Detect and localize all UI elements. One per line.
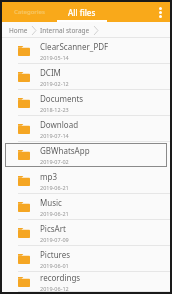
staticText: 2019-06-21 xyxy=(40,184,69,191)
staticText: Home xyxy=(9,26,28,35)
button[interactable]: Home xyxy=(9,26,28,35)
staticText: PicsArt xyxy=(40,223,66,234)
staticText: 2019-05-14 xyxy=(40,54,69,61)
staticText: Documents xyxy=(40,93,84,104)
button[interactable]: Download xyxy=(2,116,170,142)
button[interactable]: Documents xyxy=(2,90,170,116)
staticText: Pictures xyxy=(40,249,71,260)
button[interactable]: Categories xyxy=(2,2,56,22)
button[interactable]: Pictures xyxy=(2,246,170,272)
button[interactable]: Music xyxy=(2,194,170,220)
staticText: 2019-06-21 xyxy=(40,210,69,217)
staticText: DCIM xyxy=(40,67,61,78)
staticText: 2019-07-09 xyxy=(40,236,69,243)
staticText: recordings xyxy=(40,272,81,283)
button[interactable]: PicsArt xyxy=(2,220,170,246)
button[interactable]: ClearScanner_PDF xyxy=(2,38,170,64)
staticText: mp3 xyxy=(40,171,57,182)
button[interactable]: mp3 xyxy=(2,168,170,194)
staticText: 2019-07-14 xyxy=(40,132,69,139)
staticText: GBWhatsApp xyxy=(40,145,90,156)
button[interactable]: GBWhatsApp xyxy=(5,143,167,167)
staticText: Music xyxy=(40,197,62,208)
button[interactable]: More options xyxy=(150,2,170,22)
staticText: 2019-06-12 xyxy=(40,285,69,292)
button[interactable]: recordings xyxy=(2,272,170,292)
staticText: Download xyxy=(40,119,79,130)
staticText: All files xyxy=(68,7,96,18)
button[interactable]: DCIM xyxy=(2,64,170,90)
staticText: Categories xyxy=(14,8,45,16)
staticText: Internal storage xyxy=(40,26,90,35)
staticText: ClearScanner_PDF xyxy=(40,41,109,52)
staticText: 2018-12-23 xyxy=(40,106,69,113)
button[interactable]: All files xyxy=(56,2,108,22)
staticText: 2019-06-01 xyxy=(40,262,69,269)
staticText: 2019-07-02 xyxy=(40,158,69,165)
button[interactable]: Internal storage xyxy=(40,26,90,35)
staticText: 2019-02-12 xyxy=(40,80,69,87)
